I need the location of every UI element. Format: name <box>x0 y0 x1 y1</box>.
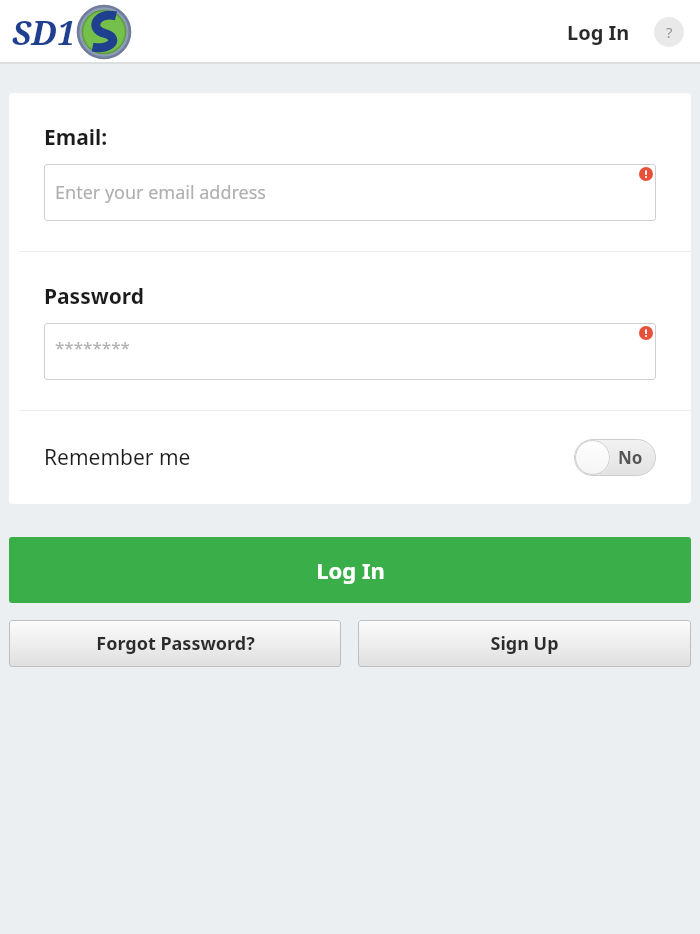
staticText: Password <box>44 282 145 311</box>
button[interactable]: Help <box>654 17 684 47</box>
staticText: Email: <box>44 123 108 152</box>
staticText: Log In <box>316 555 385 585</box>
button[interactable]: Remember me toggle, off <box>574 439 656 476</box>
staticText: SD1 <box>12 10 76 55</box>
staticText: No <box>618 446 643 469</box>
staticText: ? <box>666 22 673 42</box>
staticText: Enter your email address <box>55 180 266 205</box>
button[interactable]: Sign Up <box>358 620 691 667</box>
staticText: Log In <box>567 19 630 46</box>
button[interactable]: Log In <box>9 537 691 603</box>
staticText: ******** <box>55 336 130 359</box>
button[interactable]: Forgot Password? <box>9 620 341 667</box>
button[interactable]: ******** <box>44 323 656 380</box>
staticText: Sign Up <box>490 631 559 656</box>
staticText: Forgot Password? <box>96 631 255 656</box>
button[interactable]: Enter your email address <box>44 164 656 221</box>
staticText: Remember me <box>44 443 191 472</box>
button[interactable]: Log In <box>561 13 636 52</box>
